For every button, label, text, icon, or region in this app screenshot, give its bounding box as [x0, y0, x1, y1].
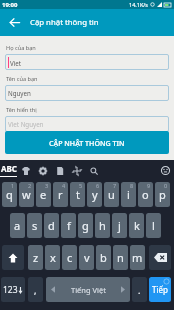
button[interactable]: g: [78, 213, 93, 238]
button[interactable]: ,: [28, 277, 43, 302]
staticText: ,: [34, 284, 37, 296]
button[interactable]: 2: [19, 182, 34, 207]
staticText: a: [14, 218, 21, 233]
button[interactable]: d: [44, 213, 59, 238]
staticText: 19:00: [2, 1, 18, 9]
staticText: ABC: [1, 163, 17, 174]
staticText: 0: [164, 182, 168, 189]
staticText: m: [132, 250, 143, 265]
button[interactable]: v: [79, 245, 94, 270]
button[interactable]: 9: [138, 182, 153, 207]
button[interactable]: Viet: [5, 54, 169, 70]
staticText: 7: [113, 182, 117, 189]
staticText: s: [32, 218, 38, 233]
button[interactable]: Backspace: [149, 245, 171, 270]
button[interactable]: Theme: [21, 166, 30, 175]
staticText: g: [82, 218, 89, 233]
staticText: 1: [11, 182, 15, 189]
staticText: k: [134, 218, 140, 233]
button[interactable]: Settings: [38, 166, 47, 175]
staticText: Viet: [10, 59, 22, 67]
button[interactable]: Search: [89, 166, 98, 175]
staticText: z: [33, 250, 39, 265]
button[interactable]: 0: [155, 182, 170, 207]
button[interactable]: Viet Nguyen: [5, 116, 169, 132]
button[interactable]: z: [28, 245, 43, 270]
button[interactable]: .: [132, 277, 147, 302]
staticText: d: [48, 218, 55, 233]
staticText: 6: [96, 182, 100, 189]
staticText: r: [58, 187, 63, 202]
button[interactable]: c: [62, 245, 77, 270]
button[interactable]: 1: [2, 182, 17, 207]
staticText: Họ của bạn: [6, 44, 36, 52]
staticText: 3: [45, 182, 49, 189]
staticText: c: [67, 250, 73, 265]
staticText: Tên của bạn: [6, 75, 38, 83]
staticText: Tiếp: [152, 284, 168, 295]
staticText: 5: [79, 182, 83, 189]
button[interactable]: ABC: [0, 163, 17, 177]
button[interactable]: Move cursor: [72, 166, 81, 175]
button[interactable]: x: [45, 245, 60, 270]
staticText: e: [40, 187, 47, 202]
staticText: x: [50, 250, 56, 265]
staticText: t: [76, 187, 80, 202]
button[interactable]: Tiếng Việt: [46, 277, 130, 302]
staticText: Tên hiển thị: [6, 106, 37, 114]
button[interactable]: 5: [70, 182, 85, 207]
staticText: CẬP NHẬT THÔNG TIN: [49, 138, 125, 148]
button[interactable]: Tiếp: [149, 277, 171, 302]
staticText: Cập nhật thông tin: [30, 17, 99, 28]
staticText: n: [117, 250, 124, 265]
button[interactable]: Clipboard: [55, 166, 64, 175]
button[interactable]: k: [129, 213, 144, 238]
staticText: 14.1K/s: [129, 1, 148, 8]
staticText: h: [99, 218, 106, 233]
button[interactable]: a: [10, 213, 25, 238]
button[interactable]: CẬP NHẬT THÔNG TIN: [5, 131, 169, 154]
button[interactable]: l: [146, 213, 161, 238]
button[interactable]: b: [96, 245, 111, 270]
staticText: y: [92, 187, 98, 202]
button[interactable]: Shift: [2, 245, 24, 270]
staticText: .: [138, 284, 141, 296]
staticText: p: [159, 187, 166, 202]
staticText: l: [152, 218, 155, 233]
staticText: 8: [130, 182, 134, 189]
staticText: i: [127, 187, 130, 202]
staticText: Viet Nguyen: [8, 120, 44, 128]
staticText: 123: [3, 284, 18, 296]
button[interactable]: 3: [36, 182, 51, 207]
button[interactable]: 7: [104, 182, 119, 207]
staticText: o: [142, 187, 149, 202]
staticText: 4: [62, 182, 66, 189]
staticText: u: [108, 187, 115, 202]
button[interactable]: 6: [87, 182, 102, 207]
button[interactable]: 123: [1, 277, 25, 302]
staticText: f: [67, 218, 71, 233]
button[interactable]: 4: [53, 182, 68, 207]
staticText: j: [118, 218, 121, 233]
staticText: w: [22, 187, 31, 202]
button[interactable]: n: [113, 245, 128, 270]
staticText: 9: [147, 182, 151, 189]
button[interactable]: h: [95, 213, 110, 238]
button[interactable]: m: [130, 245, 145, 270]
staticText: 2: [28, 182, 32, 189]
button[interactable]: Back: [0, 9, 28, 36]
button[interactable]: s: [27, 213, 42, 238]
staticText: q: [6, 187, 13, 202]
button[interactable]: Nguyen: [5, 85, 169, 101]
staticText: b: [100, 250, 107, 265]
staticText: Tiếng Việt: [71, 285, 106, 295]
button[interactable]: 8: [121, 182, 136, 207]
button[interactable]: Emoji: [161, 166, 170, 175]
staticText: Nguyen: [8, 89, 31, 97]
staticText: v: [84, 250, 90, 265]
button[interactable]: f: [61, 213, 76, 238]
button[interactable]: j: [112, 213, 127, 238]
